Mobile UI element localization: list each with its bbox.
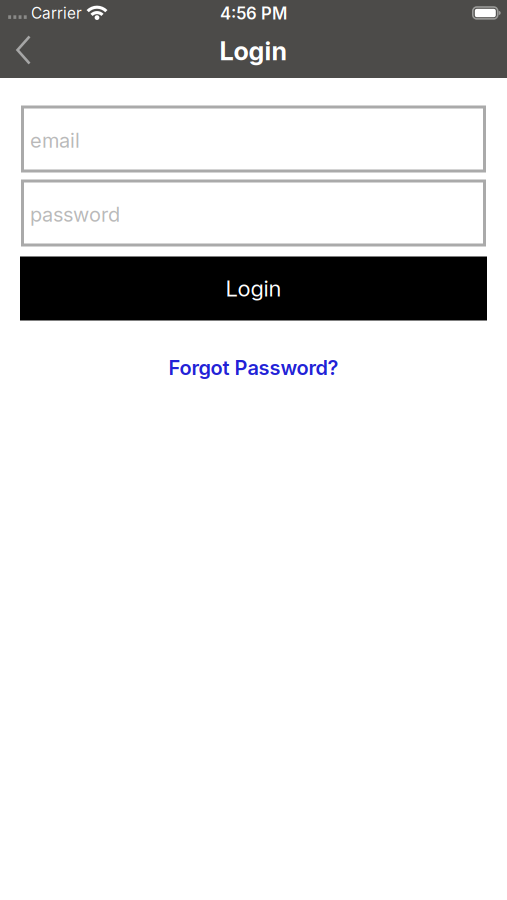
staticText: Login (219, 36, 287, 66)
button[interactable]: Forgot Password? (168, 355, 338, 380)
button[interactable]: password (21, 179, 486, 246)
staticText: 4:56 PM (220, 3, 287, 24)
button[interactable] (0, 0, 48, 78)
button[interactable]: Login (20, 256, 487, 320)
staticText: password (30, 202, 120, 227)
staticText: Login (225, 275, 281, 302)
staticText: email (30, 128, 80, 153)
staticText: Carrier (31, 4, 82, 23)
staticText: Forgot Password? (168, 355, 338, 380)
button[interactable]: email (21, 105, 486, 172)
